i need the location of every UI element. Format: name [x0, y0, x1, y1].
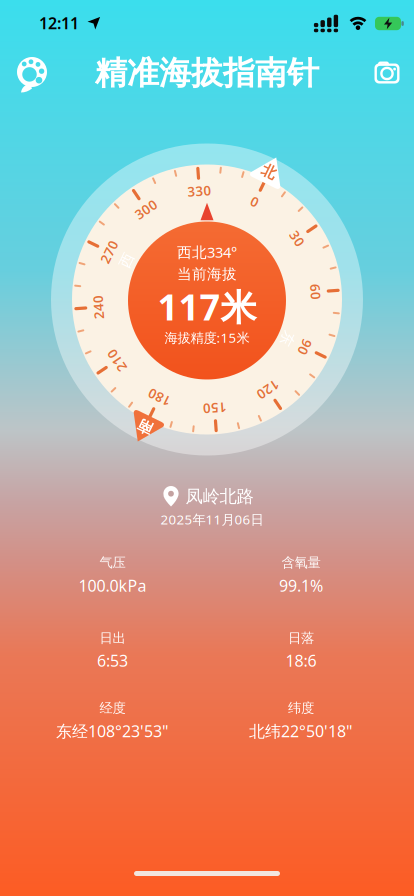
button[interactable]: Camera — [372, 59, 402, 85]
staticText: 120 — [195, 182, 219, 199]
staticText: 330 — [195, 182, 219, 199]
staticText: 300 — [195, 182, 219, 199]
staticText: 精准海拔指南针 — [95, 53, 319, 93]
staticText: 6:53 — [97, 650, 128, 671]
staticText: 117米 — [157, 283, 256, 330]
staticText: 150 — [195, 182, 219, 199]
staticText: 东 — [199, 201, 214, 219]
staticText: 海拔精度:15米 — [164, 329, 249, 346]
staticText: 日出 — [99, 630, 125, 646]
staticText: 东经108°23'53" — [56, 720, 169, 742]
staticText: 99.1% — [279, 575, 323, 596]
button[interactable]: Theme — [15, 54, 49, 90]
staticText: 凤岭北路 — [185, 486, 253, 507]
staticText: 经度 — [99, 700, 125, 716]
staticText: 30 — [199, 182, 215, 199]
staticText: 240 — [195, 182, 219, 199]
staticText: 2025年11月06日 — [160, 510, 263, 528]
staticText: 18:6 — [285, 650, 316, 671]
staticText: 气压 — [99, 554, 125, 571]
staticText: 90 — [199, 182, 215, 199]
staticText: 180 — [195, 182, 219, 199]
staticText: 60 — [199, 182, 215, 199]
staticText: 100.0kPa — [78, 575, 146, 596]
staticText: 当前海拔 — [177, 265, 237, 283]
staticText: 西北334° — [177, 242, 237, 262]
staticText: 含氧量 — [281, 554, 320, 571]
staticText: 纬度 — [288, 700, 314, 716]
staticText: 210 — [195, 182, 219, 199]
staticText: 北纬22°50'18" — [249, 720, 353, 742]
staticText: 西 — [199, 201, 214, 219]
staticText: 270 — [195, 182, 219, 199]
staticText: 0 — [203, 182, 211, 199]
staticText: 南 — [199, 148, 214, 166]
staticText: 12:11 — [39, 12, 79, 34]
staticText: 日落 — [288, 630, 314, 646]
staticText: 北 — [199, 148, 214, 166]
